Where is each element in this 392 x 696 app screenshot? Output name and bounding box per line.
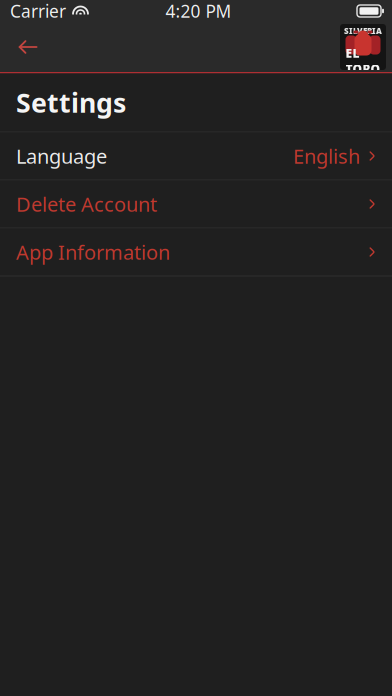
button[interactable]: Language — [0, 132, 392, 180]
staticText: Carrier — [10, 0, 66, 22]
staticText: Delete Account — [16, 191, 157, 217]
staticText: App Information — [16, 239, 170, 265]
button[interactable]: App Information — [0, 228, 392, 276]
staticText: 4:20 PM — [165, 0, 231, 22]
button[interactable]: El Toro home — [340, 24, 392, 70]
staticText: Language — [16, 143, 107, 169]
staticText: EL TORO — [345, 45, 380, 77]
button[interactable]: Delete Account — [0, 180, 392, 228]
staticText: Settings — [16, 85, 126, 120]
button[interactable]: Back — [6, 25, 50, 69]
staticText: English — [293, 143, 360, 169]
staticText: SILVERIA — [344, 26, 382, 36]
